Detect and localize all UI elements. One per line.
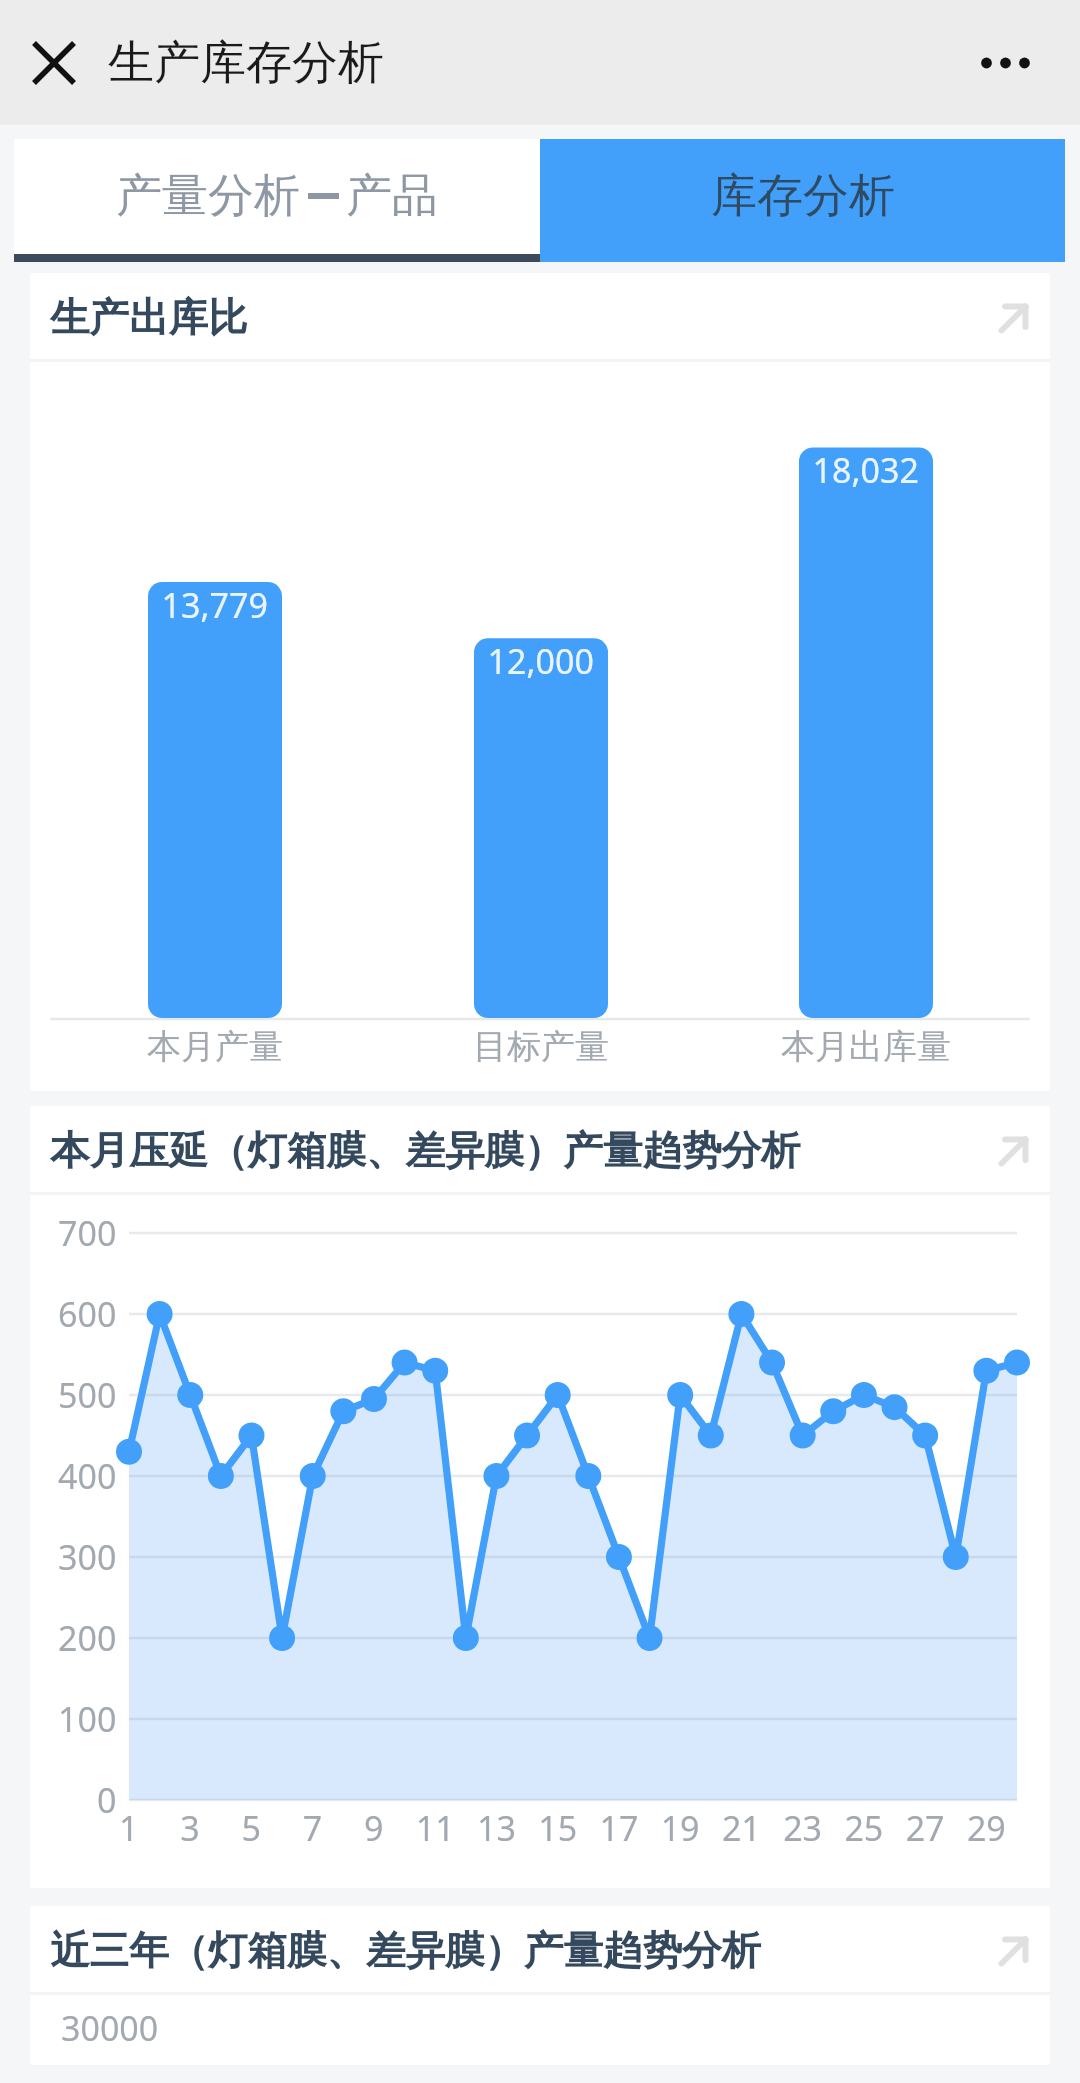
button[interactable]: Close [0, 0, 108, 125]
staticText: 生产出库比 [50, 293, 248, 343]
button[interactable]: Expand [983, 1920, 1045, 1982]
staticText: 库存分析 [711, 167, 895, 225]
staticText: 近三年（灯箱膜、差异膜）产量趋势分析 [50, 1926, 761, 1976]
staticText: 产品 [346, 167, 438, 225]
button[interactable]: 库存分析 [540, 139, 1065, 262]
button[interactable]: 产量分析 [14, 139, 540, 262]
button[interactable]: More options [930, 0, 1080, 125]
staticText: 本月压延（灯箱膜、差异膜）产量趋势分析 [50, 1126, 801, 1176]
button[interactable]: Expand [983, 1120, 1045, 1182]
button[interactable]: Expand [983, 287, 1045, 349]
staticText: 30000 [61, 2005, 159, 2051]
staticText: 产量分析 [116, 167, 300, 225]
staticText: 生产库存分析 [108, 34, 384, 92]
